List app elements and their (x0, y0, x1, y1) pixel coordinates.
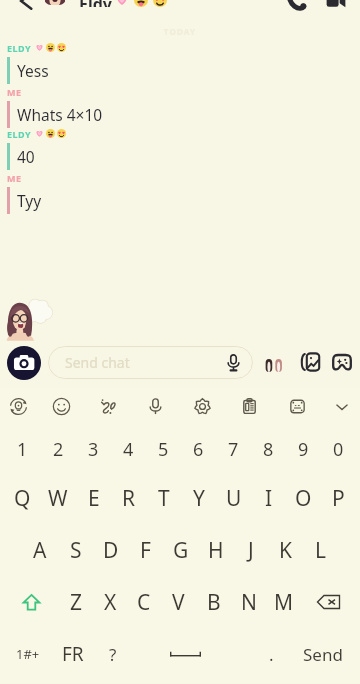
staticText: H (208, 536, 224, 565)
button[interactable]: B (196, 576, 231, 628)
button[interactable]: 5 (146, 425, 181, 473)
button[interactable]: 6 (181, 425, 216, 473)
staticText: ? (109, 643, 117, 666)
button[interactable]: K (268, 524, 303, 576)
staticText: X (104, 588, 117, 617)
button[interactable]: 7 (216, 425, 251, 473)
button[interactable]: Clipboard (232, 388, 266, 425)
button[interactable]: E (76, 473, 111, 524)
button[interactable]: A (22, 524, 58, 576)
button[interactable]: L (303, 524, 338, 576)
staticText: Send (303, 643, 343, 666)
button[interactable]: R (111, 473, 146, 524)
button[interactable]: 8 (251, 425, 286, 473)
button[interactable]: T (146, 473, 181, 524)
button[interactable]: Collapse keyboard (325, 388, 359, 425)
button[interactable]: ME (0, 86, 360, 128)
button[interactable]: Friends (263, 359, 285, 372)
button[interactable]: M (266, 576, 301, 628)
button[interactable]: N (231, 576, 266, 628)
button[interactable]: Z (59, 576, 93, 628)
staticText: 40 (17, 146, 35, 167)
button[interactable]: W (40, 473, 76, 524)
staticText: K (279, 536, 292, 565)
button[interactable]: ? (94, 628, 131, 680)
staticText: 7 (228, 437, 239, 462)
button[interactable]: Shift (4, 576, 59, 628)
button[interactable]: Stickers (300, 353, 320, 371)
button[interactable]: Backspace (301, 576, 356, 628)
button[interactable]: H (198, 524, 233, 576)
button[interactable]: . (253, 628, 290, 680)
button[interactable]: FR (51, 628, 94, 680)
staticText: Y (193, 484, 205, 513)
button[interactable]: X (93, 576, 127, 628)
button[interactable]: Call (283, 0, 309, 2)
button[interactable]: 4 (111, 425, 146, 473)
staticText: V (172, 588, 185, 617)
button[interactable]: G (163, 524, 198, 576)
staticText: G (173, 536, 189, 565)
button[interactable]: Voice input (138, 388, 172, 425)
button[interactable]: Space (131, 628, 253, 680)
staticText: . (269, 643, 274, 666)
button[interactable]: D (93, 524, 128, 576)
button[interactable]: 3 (76, 425, 111, 473)
staticText: J (248, 536, 254, 565)
staticText: 3 (88, 437, 99, 462)
button[interactable]: Send (290, 628, 356, 680)
button[interactable]: Q (4, 473, 40, 524)
button[interactable]: 0 (321, 425, 356, 473)
staticText: B (207, 588, 221, 617)
button[interactable]: I (251, 473, 286, 524)
staticText: ME (7, 172, 22, 183)
button[interactable]: Text scan (280, 388, 314, 425)
staticText: ME (7, 86, 22, 97)
button[interactable]: 1#+ (4, 628, 51, 680)
staticText: M (274, 588, 294, 617)
button[interactable]: Games (332, 354, 352, 371)
button[interactable]: S (58, 524, 93, 576)
button[interactable]: F (128, 524, 163, 576)
button[interactable]: Back (14, 0, 38, 3)
button[interactable]: Keyboard switch (1, 388, 35, 425)
staticText: 1#+ (16, 645, 40, 663)
staticText: 2 (53, 437, 64, 462)
staticText: 1 (17, 437, 28, 462)
staticText: Q (14, 484, 31, 513)
staticText: 6 (193, 437, 204, 462)
button[interactable]: ME (0, 172, 360, 214)
button[interactable]: 1 (4, 425, 40, 473)
staticText: 8 (263, 437, 274, 462)
button[interactable]: 2 (40, 425, 76, 473)
button[interactable]: P (321, 473, 356, 524)
staticText: R (122, 484, 136, 513)
staticText: O (295, 484, 312, 513)
button[interactable]: C (127, 576, 161, 628)
button[interactable]: J (233, 524, 268, 576)
staticText: 9 (298, 437, 309, 462)
button[interactable]: O (286, 473, 321, 524)
button[interactable]: Settings (185, 388, 219, 425)
staticText: Z (70, 588, 83, 617)
button[interactable]: 9 (286, 425, 321, 473)
staticText: Eldy (79, 0, 112, 7)
button[interactable]: U (216, 473, 251, 524)
button[interactable]: Send chat (48, 346, 253, 379)
button[interactable]: Video call (323, 0, 349, 2)
staticText: Tyy (17, 190, 42, 211)
button[interactable]: Profile (44, 0, 66, 5)
button[interactable]: V (161, 576, 196, 628)
staticText: ELDY (7, 128, 32, 139)
staticText: 4 (123, 437, 134, 462)
staticText: Yess (17, 60, 49, 81)
staticText: L (315, 536, 327, 565)
button[interactable]: ELDY (0, 42, 360, 84)
button[interactable]: Emoji (44, 388, 78, 425)
staticText: E (88, 484, 100, 513)
staticText: Send chat (65, 353, 130, 372)
button[interactable]: ELDY (0, 128, 360, 170)
button[interactable]: Camera (7, 346, 41, 380)
button[interactable]: GIF (91, 388, 125, 425)
button[interactable]: Y (181, 473, 216, 524)
